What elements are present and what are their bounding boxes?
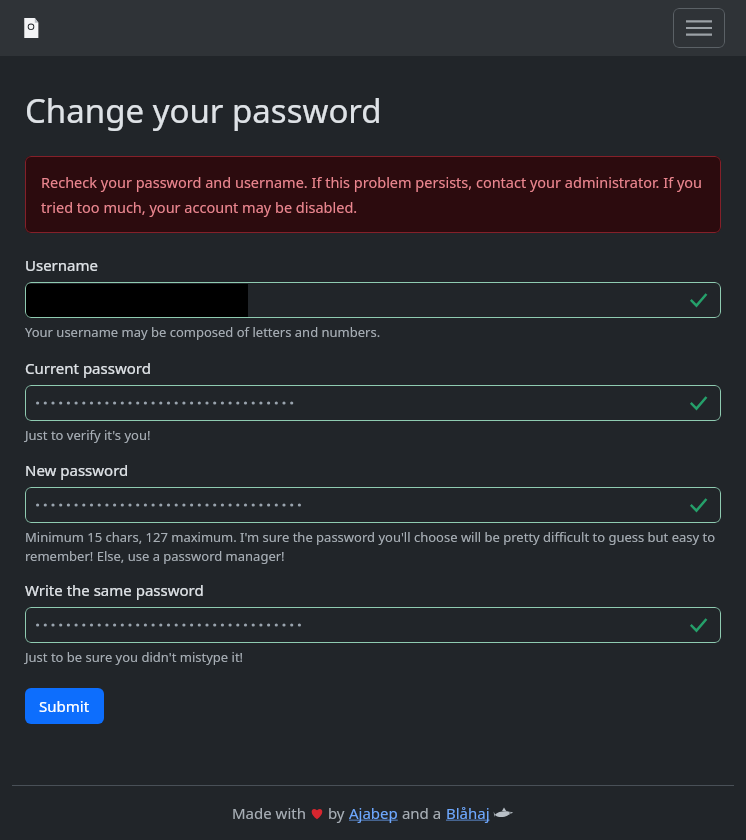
staticText: Made with [232,803,310,823]
staticText: Current password [25,358,151,378]
staticText: Write the same password [25,580,204,600]
staticText: and a [398,803,446,823]
button[interactable]: Ajabep [349,803,398,823]
staticText: Ajabep [349,803,398,823]
staticText: Blåhaj [446,803,494,823]
staticText: Just to be sure you didn't mistype it! [25,648,244,666]
staticText: New password [25,460,129,480]
button[interactable] [25,487,721,523]
button[interactable] [25,607,721,643]
staticText: Submit [39,696,90,716]
button[interactable]: Home [18,15,44,41]
staticText: Just to verify it's you! [25,426,151,444]
staticText: Minimum 15 chars, 127 maximum. I'm sure … [25,528,721,565]
staticText: by [324,803,349,823]
button[interactable] [25,385,721,421]
staticText: Your username may be composed of letters… [25,323,381,341]
button[interactable] [25,282,721,318]
staticText: Change your password [25,88,382,133]
button[interactable]: Blåhaj [446,803,514,823]
button[interactable]: Submit [25,688,104,724]
staticText: Recheck your password and username. If t… [41,172,705,217]
button[interactable]: Menu [673,8,725,48]
staticText: Username [25,255,98,275]
